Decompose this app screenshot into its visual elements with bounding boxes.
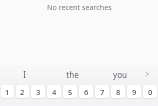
- button[interactable]: More suggestions: [144, 63, 158, 85]
- staticText: you: [113, 69, 127, 80]
- staticText: 7: [100, 87, 105, 97]
- button[interactable]: 9: [127, 85, 141, 98]
- button[interactable]: 8: [111, 85, 125, 98]
- staticText: No recent searches: [47, 2, 112, 12]
- staticText: 4: [52, 87, 57, 97]
- button[interactable]: 6: [79, 85, 93, 98]
- staticText: 2: [20, 87, 25, 97]
- button[interactable]: you: [96, 63, 144, 85]
- staticText: 3: [36, 87, 41, 97]
- button[interactable]: 5: [63, 85, 77, 98]
- staticText: the: [66, 69, 79, 80]
- staticText: 5: [68, 87, 73, 97]
- staticText: 9: [132, 87, 137, 97]
- button[interactable]: I: [0, 63, 48, 85]
- staticText: 1: [5, 87, 10, 97]
- staticText: 6: [84, 87, 89, 97]
- staticText: 0: [148, 87, 153, 97]
- button[interactable]: 2: [16, 85, 29, 98]
- button[interactable]: 0: [143, 85, 157, 98]
- button[interactable]: the: [48, 63, 96, 85]
- button[interactable]: 7: [95, 85, 109, 98]
- staticText: I: [23, 69, 26, 80]
- button[interactable]: 3: [31, 85, 45, 98]
- button[interactable]: 4: [47, 85, 61, 98]
- button[interactable]: 1: [1, 85, 14, 98]
- staticText: 8: [116, 87, 121, 97]
